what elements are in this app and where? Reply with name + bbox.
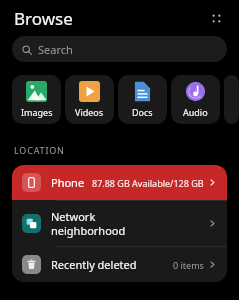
staticText: 0 items: [173, 259, 204, 271]
staticText: Audio: [183, 106, 208, 118]
staticText: Phone: [51, 175, 85, 190]
staticText: 87.88 GB Available/128 GB: [92, 177, 204, 189]
staticText: Videos: [75, 106, 104, 118]
button[interactable]: More options: [203, 5, 229, 31]
button[interactable]: Audio: [171, 75, 220, 124]
staticText: Docs: [132, 106, 153, 118]
button[interactable]: Network neighborhood: [12, 201, 227, 246]
staticText: Browse: [14, 7, 73, 30]
staticText: Recently deleted: [51, 257, 137, 272]
staticText: Network neighborhood: [51, 209, 126, 238]
button[interactable]: Recently deleted: [12, 247, 227, 282]
button[interactable]: Docs: [118, 75, 167, 124]
staticText: Search: [38, 42, 73, 57]
button[interactable]: More categories: [224, 75, 239, 124]
staticText: Images: [21, 106, 53, 118]
button[interactable]: Search: [12, 36, 227, 62]
button[interactable]: Phone: [12, 165, 227, 200]
button[interactable]: Videos: [65, 75, 114, 124]
button[interactable]: Images: [12, 75, 61, 124]
staticText: LOCATION: [14, 144, 65, 156]
